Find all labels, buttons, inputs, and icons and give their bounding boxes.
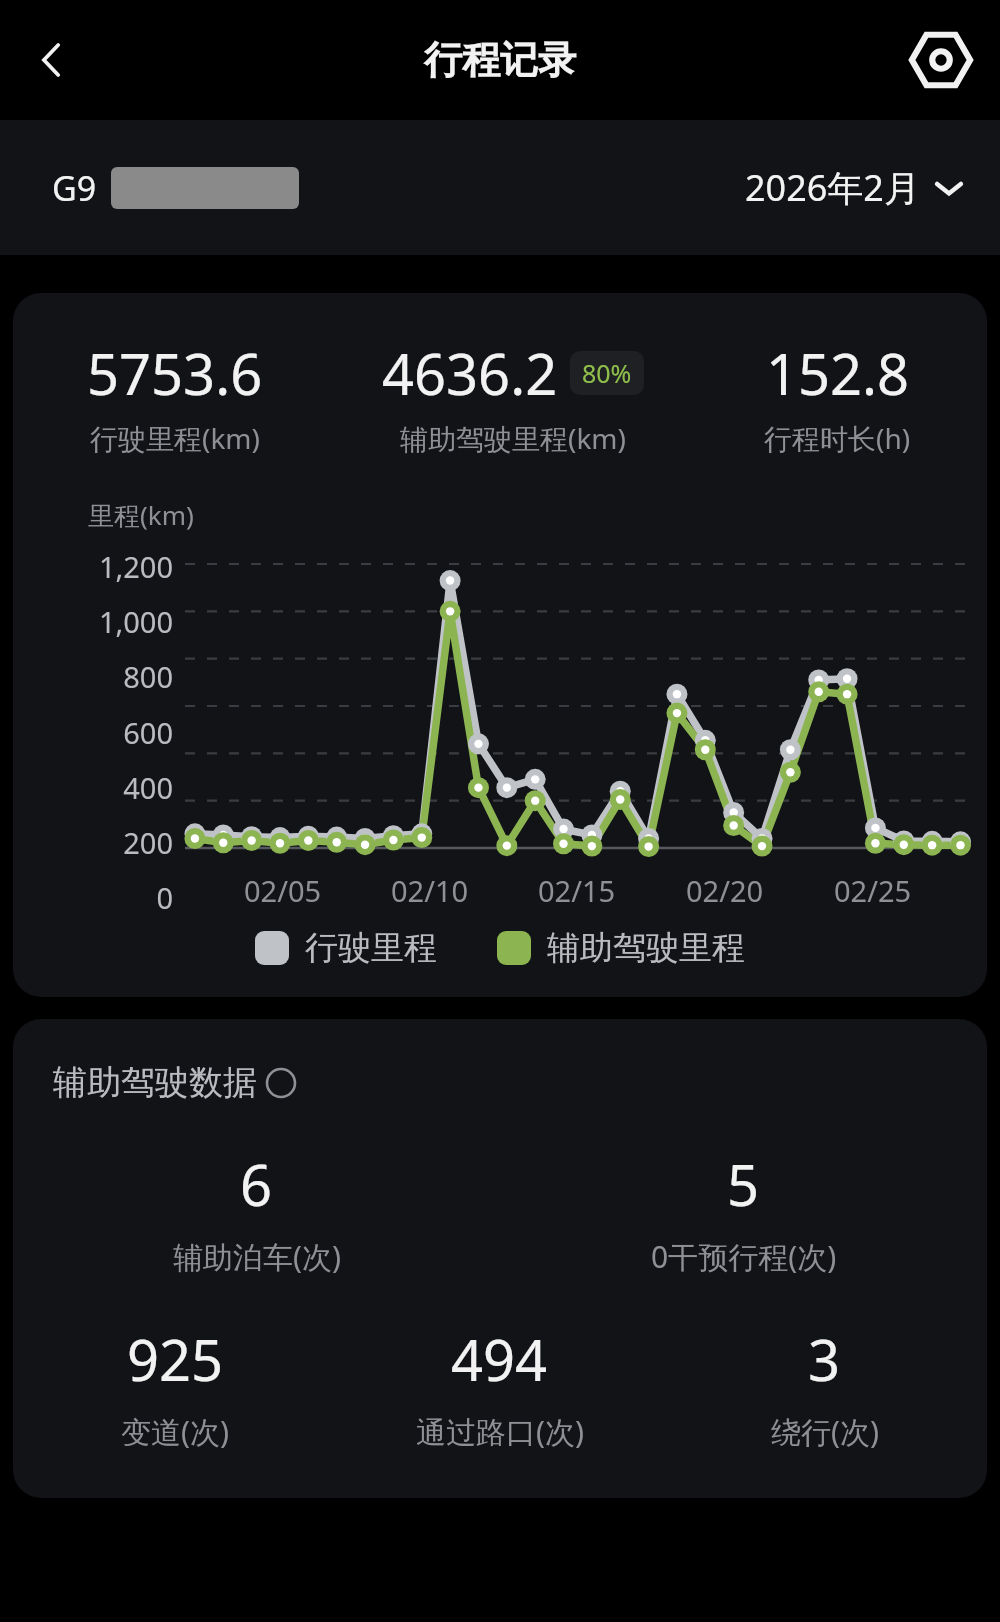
staticText: 02/15 [538,871,616,910]
staticText: 400 [123,768,173,807]
button[interactable]: 6 [13,1146,500,1277]
staticText: 行程时长(h) [764,419,911,457]
staticText: 5753.6 [87,335,263,411]
staticText: 里程(km) [88,497,194,533]
button[interactable]: Back [14,26,82,94]
staticText: 变道(次) [121,1411,229,1452]
staticText: 行程记录 [424,36,576,84]
staticText: 200 [123,823,173,862]
staticText: 行驶里程(km) [90,419,260,457]
staticText: 0 [156,878,173,917]
button[interactable]: 辅助驾驶里程 [497,927,745,969]
staticText: 925 [127,1321,224,1397]
button[interactable]: 925 [13,1321,337,1452]
staticText: 494 [451,1321,548,1397]
staticText: 辅助驾驶数据 [53,1061,257,1104]
staticText: 0干预行程(次) [651,1236,837,1277]
staticText: 152.8 [766,335,910,411]
staticText: 通过路口(次) [416,1411,584,1452]
button[interactable]: 5753.6 [13,335,337,457]
button[interactable]: 5 [500,1146,987,1277]
button[interactable]: 2026年2月 [745,163,966,212]
staticText: 3 [808,1321,841,1397]
staticText: 02/20 [686,871,764,910]
staticText: 辅助泊车(次) [173,1236,341,1277]
button[interactable]: 152.8 [688,335,987,457]
staticText: 2026年2月 [745,163,920,212]
staticText: 800 [123,657,173,696]
staticText: 4636.2 [382,335,558,411]
staticText: 6 [240,1146,273,1222]
button[interactable]: 4636.2 [337,335,688,457]
staticText: 1,000 [98,602,173,641]
staticText: 辅助驾驶里程(km) [400,419,626,457]
staticText: 80% [582,356,632,390]
staticText: 600 [123,713,173,752]
button[interactable]: 辅助驾驶数据 [53,1061,297,1104]
staticText: 02/25 [834,871,912,910]
staticText: 绕行(次) [771,1411,879,1452]
staticText: 02/05 [244,871,322,910]
button[interactable]: 行驶里程 [255,927,437,969]
staticText: G9 [52,165,97,211]
button[interactable]: 494 [337,1321,662,1452]
other: Info [265,1067,297,1099]
staticText: 02/10 [391,871,469,910]
staticText: 辅助驾驶里程 [547,927,745,969]
staticText: 5 [727,1146,760,1222]
button[interactable]: Settings [906,25,976,95]
staticText: 1,200 [98,547,173,586]
staticText: 行驶里程 [305,927,437,969]
button[interactable]: 3 [662,1321,987,1452]
